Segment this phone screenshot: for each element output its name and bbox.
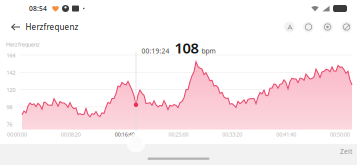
staticText: Zeit [340,147,352,156]
staticText: Herzfrequenz [6,41,40,48]
button[interactable]: Playback speed [303,21,314,32]
staticText: 00:00:00 [7,131,27,138]
button[interactable]: Brightness [322,21,333,32]
staticText: 76 [6,121,12,128]
staticText: 00:25:00 [168,131,188,138]
staticText: 00:16:40 [115,131,135,138]
staticText: 108 [174,38,198,57]
staticText: 00:41:40 [276,131,296,138]
button[interactable]: Edit [341,21,352,32]
staticText: 00:08:20 [61,131,81,138]
button[interactable]: Annotation [284,21,295,32]
staticText: Herzfrequenz [25,22,78,32]
staticText: 164 [6,52,15,59]
staticText: 98 [6,104,12,111]
staticText: 00:19:24 [141,46,169,55]
button[interactable]: Herzfrequenz [0,18,86,36]
staticText: 00:33:20 [222,131,242,138]
staticText: 142 [6,69,15,76]
staticText: 08:54 [29,4,47,13]
staticText: bpm [201,46,215,55]
staticText: 120 [6,86,15,93]
staticText: 00:50:00 [330,131,350,138]
